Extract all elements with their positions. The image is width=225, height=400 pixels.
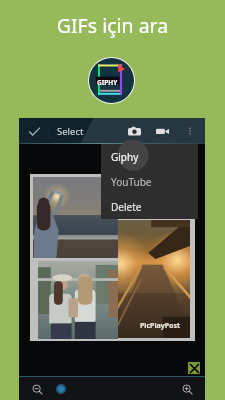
button[interactable]: Zoom out <box>27 379 47 399</box>
button[interactable]: Giphy <box>101 144 198 169</box>
button[interactable]: Close <box>188 362 200 374</box>
staticText: PicPlayPost <box>140 321 180 331</box>
staticText: YouTube <box>111 175 152 189</box>
button[interactable]: Current page <box>51 379 71 399</box>
button[interactable]: Delete <box>101 194 198 219</box>
staticText: GIPHY <box>97 78 118 87</box>
button[interactable]: More options <box>181 118 199 144</box>
staticText: Giphy <box>111 150 139 164</box>
button[interactable]: Camera <box>121 118 147 144</box>
staticText: Delete <box>111 200 142 214</box>
button[interactable]: Giphy app icon <box>89 58 134 103</box>
staticText: GIFs için ara <box>0 12 225 39</box>
button[interactable]: YouTube <box>101 169 198 194</box>
button[interactable]: Zoom in <box>177 379 197 399</box>
button[interactable]: Select <box>19 118 89 144</box>
button[interactable]: Video <box>149 118 175 144</box>
staticText: Select <box>57 125 84 138</box>
